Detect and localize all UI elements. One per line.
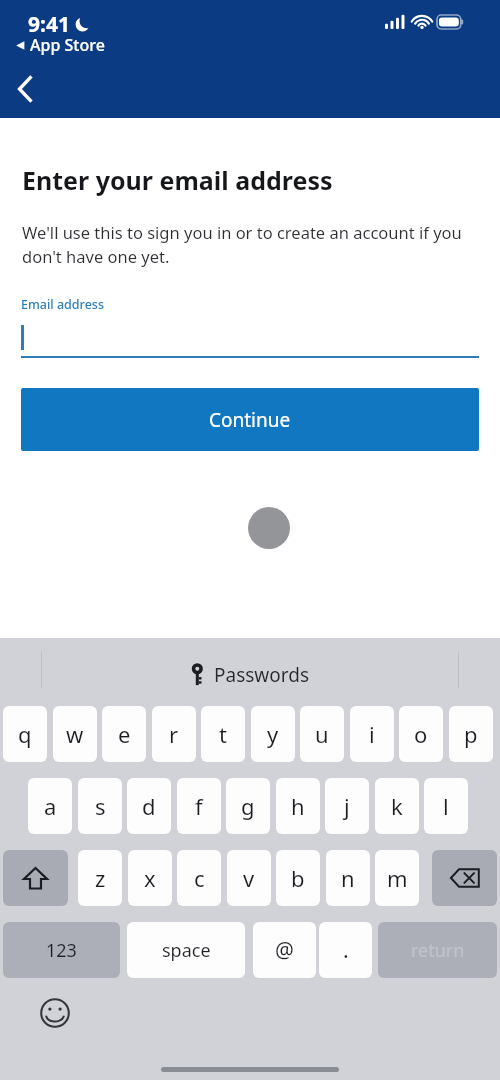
button[interactable]: w: [53, 706, 97, 762]
button[interactable]: y: [251, 706, 295, 762]
staticText: d: [142, 791, 156, 821]
staticText: e: [118, 719, 131, 749]
staticText: i: [369, 719, 375, 749]
staticText: b: [291, 863, 305, 893]
button[interactable]: s: [78, 778, 122, 834]
button[interactable]: l: [424, 778, 468, 834]
staticText: a: [44, 791, 57, 821]
staticText: v: [243, 863, 255, 893]
button[interactable]: z: [78, 850, 122, 906]
staticText: App Store: [30, 34, 105, 56]
button[interactable]: f: [177, 778, 221, 834]
staticText: We'll use this to sign you in or to crea…: [22, 221, 482, 268]
staticText: w: [66, 719, 84, 749]
button[interactable]: c: [177, 850, 221, 906]
button[interactable]: o: [399, 706, 443, 762]
button[interactable]: Backspace: [432, 850, 497, 906]
button[interactable]: e: [102, 706, 146, 762]
button[interactable]: .: [319, 922, 372, 978]
button[interactable]: Shift: [3, 850, 68, 906]
button[interactable]: v: [227, 850, 271, 906]
button[interactable]: i: [350, 706, 394, 762]
staticText: n: [341, 863, 355, 893]
button[interactable]: b: [276, 850, 320, 906]
button[interactable]: n: [326, 850, 370, 906]
staticText: Passwords: [214, 662, 310, 688]
staticText: return: [411, 938, 465, 963]
staticText: t: [219, 719, 227, 749]
button[interactable]: x: [128, 850, 172, 906]
button[interactable]: Numbers: [3, 922, 120, 978]
staticText: y: [267, 719, 279, 749]
button[interactable]: @: [253, 922, 316, 978]
staticText: k: [391, 791, 403, 821]
button[interactable]: m: [375, 850, 419, 906]
button[interactable]: k: [375, 778, 419, 834]
button[interactable]: return: [378, 922, 497, 978]
button[interactable]: space: [127, 922, 245, 978]
button[interactable]: u: [300, 706, 344, 762]
staticText: r: [169, 719, 179, 749]
staticText: l: [443, 791, 449, 821]
button[interactable]: q: [3, 706, 47, 762]
button[interactable]: g: [226, 778, 270, 834]
button[interactable]: p: [449, 706, 493, 762]
button[interactable]: r: [152, 706, 196, 762]
staticText: Continue: [209, 407, 291, 433]
staticText: m: [387, 863, 408, 893]
staticText: o: [414, 719, 428, 749]
button[interactable]: Passwords: [0, 658, 500, 692]
staticText: space: [162, 938, 211, 963]
button[interactable]: Back: [4, 68, 46, 110]
staticText: 123: [46, 938, 77, 963]
button[interactable]: j: [325, 778, 369, 834]
staticText: Email address: [21, 296, 104, 313]
staticText: u: [315, 719, 329, 749]
button[interactable]: h: [276, 778, 320, 834]
button[interactable]: d: [127, 778, 171, 834]
staticText: x: [144, 863, 156, 893]
button[interactable]: Continue: [21, 388, 479, 451]
staticText: p: [464, 719, 478, 749]
staticText: c: [194, 863, 205, 893]
staticText: q: [18, 719, 32, 749]
staticText: z: [95, 863, 106, 893]
staticText: .: [343, 936, 349, 965]
staticText: h: [291, 791, 305, 821]
staticText: g: [241, 791, 255, 821]
button[interactable]: Email address: [21, 296, 479, 358]
staticText: @: [275, 936, 294, 965]
staticText: j: [344, 791, 350, 821]
staticText: 9:41: [28, 10, 70, 39]
button[interactable]: Emoji: [36, 994, 74, 1032]
staticText: s: [95, 791, 106, 821]
button[interactable]: a: [28, 778, 72, 834]
staticText: f: [195, 791, 203, 821]
button[interactable]: t: [201, 706, 245, 762]
staticText: Enter your email address: [22, 163, 333, 197]
